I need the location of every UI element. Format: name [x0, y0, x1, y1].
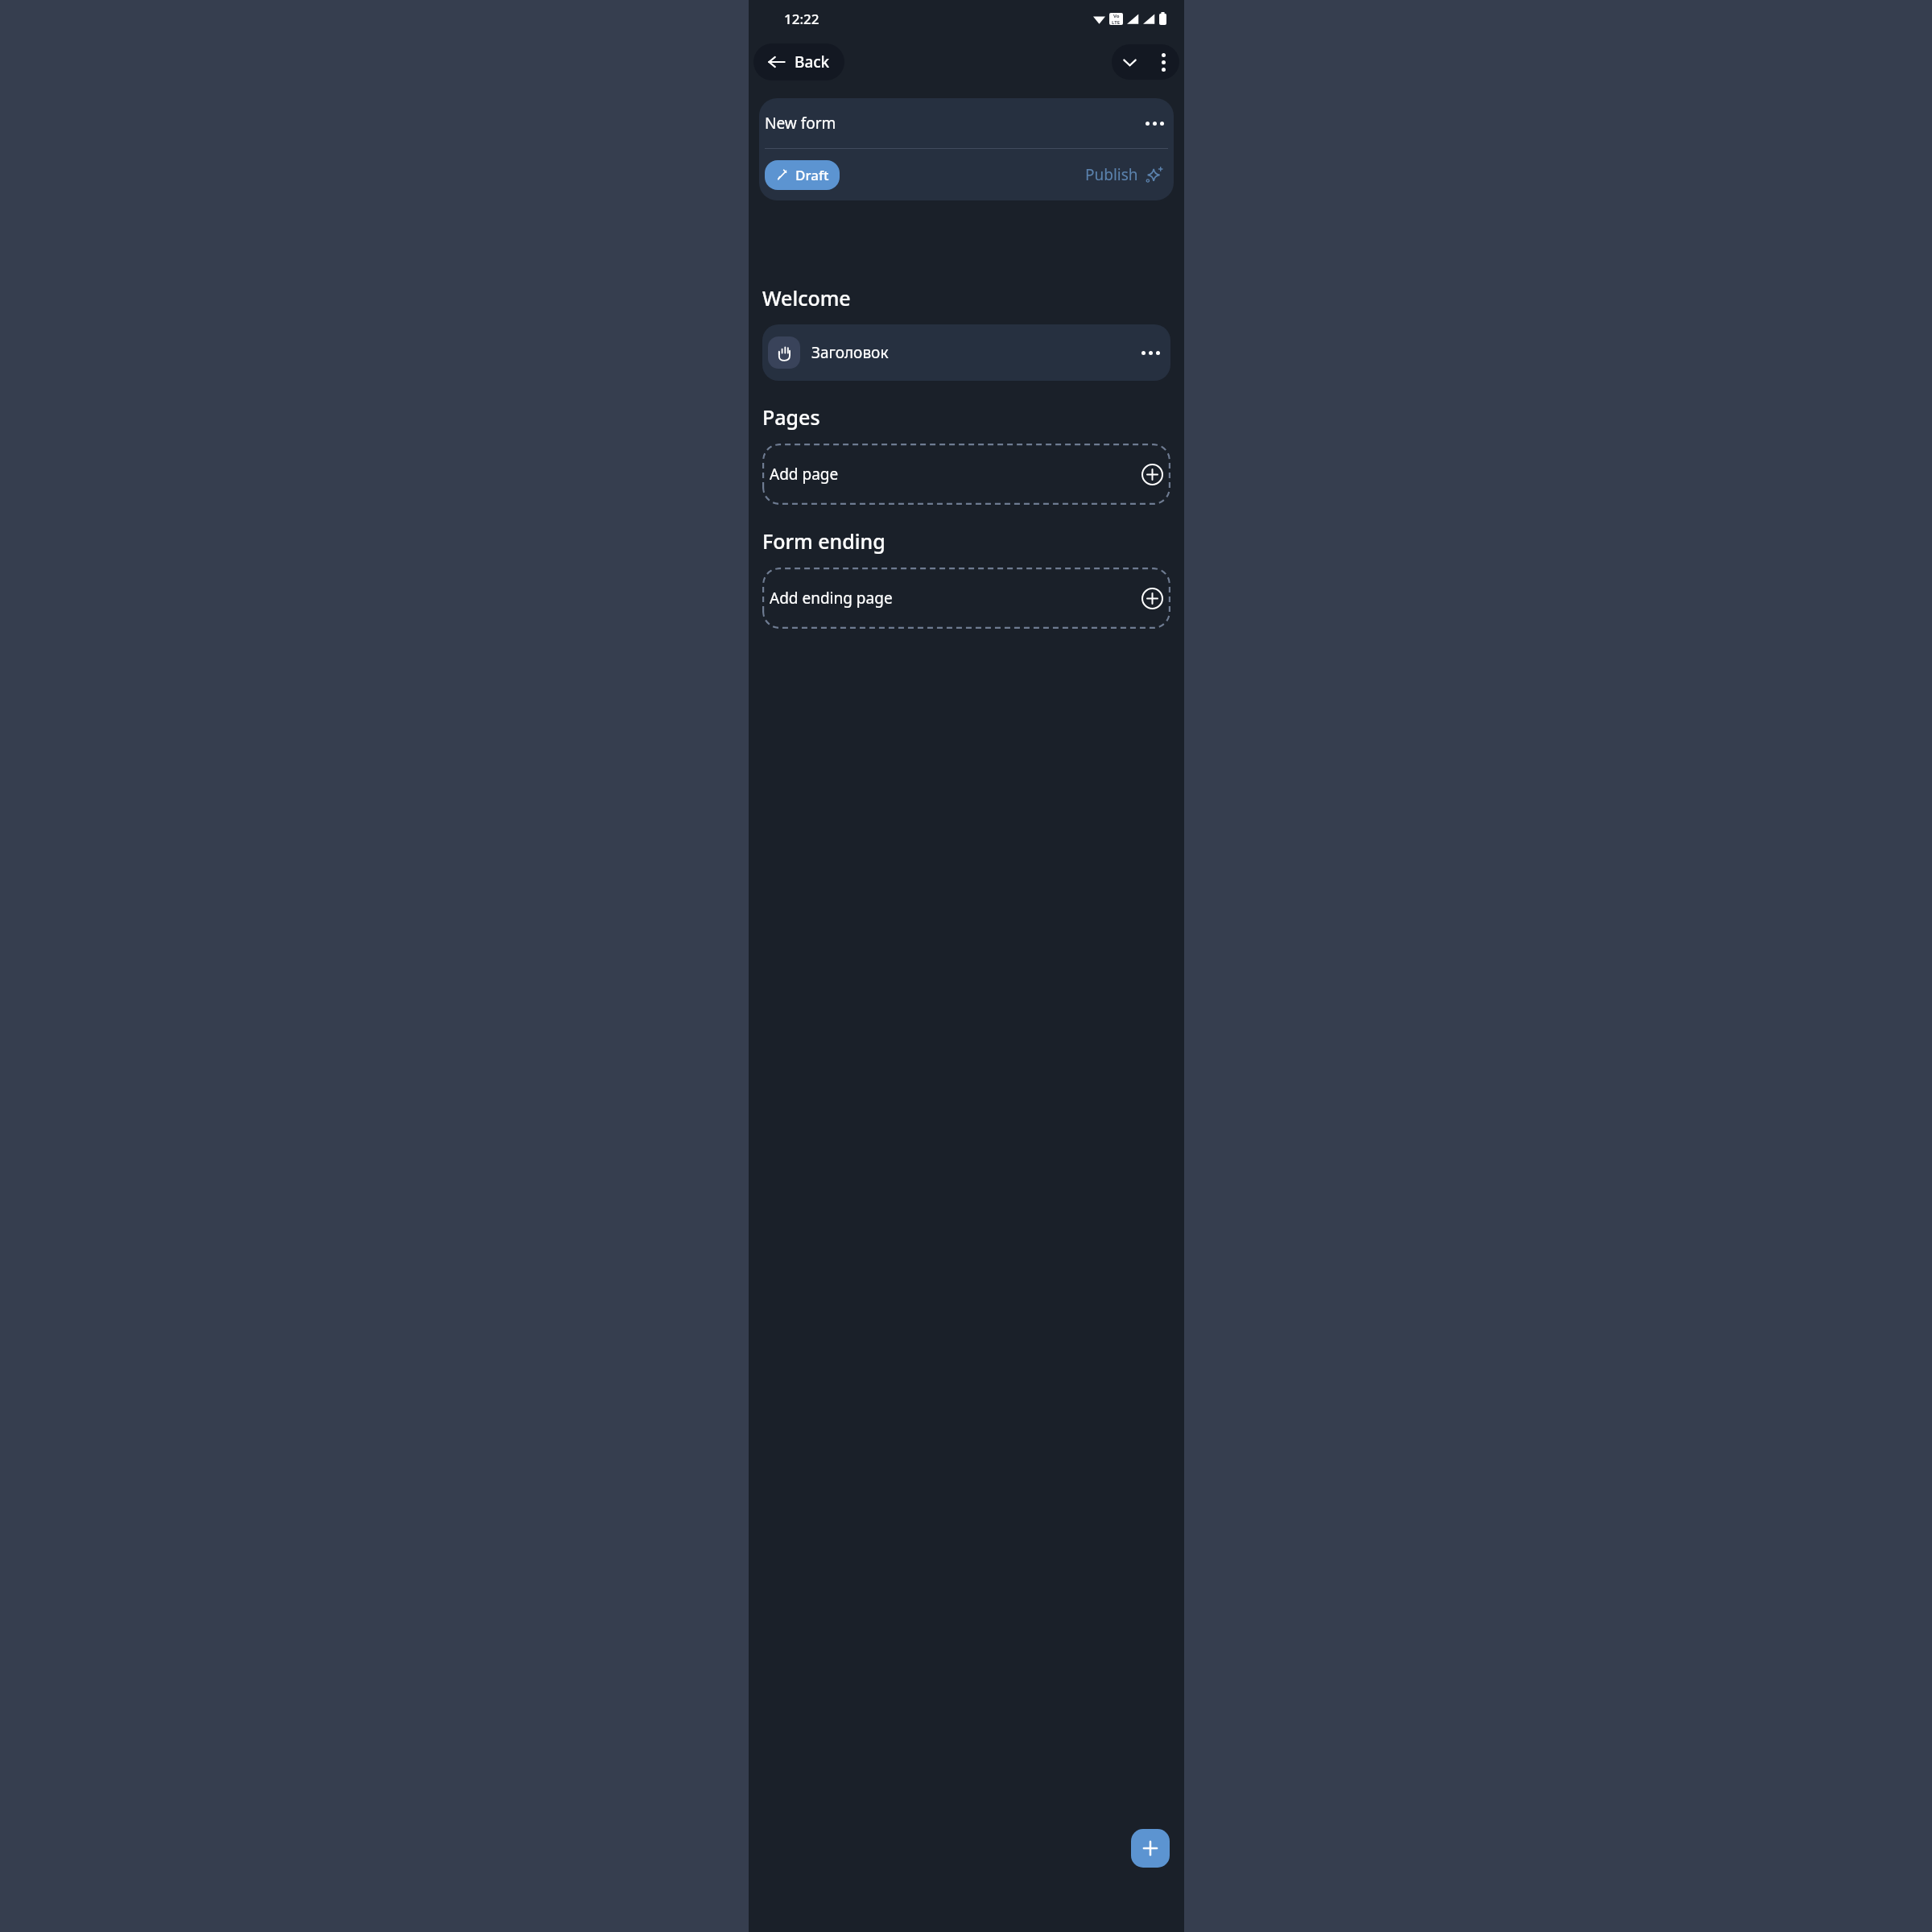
staticText: Back	[795, 52, 830, 72]
staticText: Draft	[795, 166, 829, 184]
button[interactable]: Form options	[1141, 109, 1168, 137]
staticText: Publish	[1085, 164, 1138, 185]
button[interactable]: Add ending page	[762, 568, 1170, 629]
button[interactable]: Add	[1131, 1829, 1170, 1868]
button[interactable]: Add page	[762, 444, 1170, 505]
staticText: Add ending page	[770, 588, 1141, 609]
staticText: LTE	[1112, 19, 1121, 25]
button[interactable]: Заголовок	[762, 324, 1170, 381]
button[interactable]: New form	[759, 98, 1174, 200]
staticText: Заголовок	[811, 342, 1136, 363]
staticText: New form	[765, 113, 1141, 134]
staticText: Vo	[1113, 13, 1120, 19]
button[interactable]: Expand	[1112, 44, 1147, 80]
button[interactable]: Draft	[765, 160, 840, 190]
button[interactable]: More options	[1147, 44, 1179, 80]
button[interactable]: Publish	[1080, 160, 1168, 189]
staticText: 12:22	[784, 10, 819, 28]
button[interactable]: Item options	[1136, 338, 1165, 367]
staticText: Pages	[762, 403, 820, 431]
staticText: Welcome	[762, 284, 851, 312]
staticText: Form ending	[762, 527, 885, 555]
staticText: Add page	[770, 464, 1141, 485]
button[interactable]: Back	[753, 43, 844, 80]
